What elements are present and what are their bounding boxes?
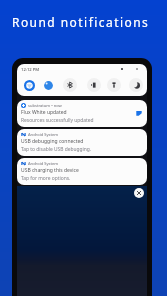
button[interactable]: Flashlight — [107, 78, 121, 92]
staticText: USB charging this device — [21, 167, 79, 174]
staticText: 12:12 PM — [21, 67, 40, 73]
button[interactable]: Clear all notifications — [134, 188, 144, 198]
staticText: Resources successfully updated — [21, 117, 94, 124]
staticText: Tap for more options. — [21, 175, 71, 182]
button[interactable]: Do not disturb — [129, 78, 143, 92]
staticText: Flux White updated — [21, 109, 67, 116]
button[interactable]: substratum • now — [17, 100, 147, 127]
button[interactable]: Wi-Fi — [22, 78, 36, 92]
staticText: substratum • now — [28, 103, 62, 108]
staticText: Round notifications — [12, 14, 150, 30]
staticText: Tap to disable USB debugging. — [21, 146, 92, 153]
button[interactable]: Android System — [17, 158, 147, 185]
staticText: Android System — [28, 161, 59, 166]
button[interactable]: Mobile data — [41, 78, 55, 92]
staticText: USB debugging connected — [21, 138, 84, 145]
staticText: Android System — [28, 132, 59, 137]
button[interactable]: Bluetooth — [63, 78, 77, 92]
button[interactable]: Battery saver — [87, 78, 101, 92]
button[interactable]: Android System — [17, 129, 147, 156]
